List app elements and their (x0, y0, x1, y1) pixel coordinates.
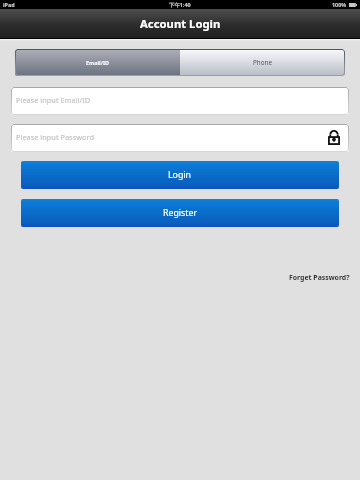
button[interactable]: Please input Password (11, 124, 349, 152)
staticText: Please input Email/ID (16, 95, 91, 105)
staticText: Please input Password (16, 132, 94, 142)
button[interactable]: Login (21, 161, 339, 189)
button[interactable]: Forget Password? (289, 273, 360, 282)
staticText: iPad (3, 1, 15, 8)
staticText: Phone (253, 58, 272, 67)
button[interactable]: Please input Email/ID (11, 87, 349, 115)
button[interactable]: Show password (328, 130, 340, 145)
button[interactable]: Email/ID (15, 49, 180, 76)
staticText: Email/ID (86, 59, 110, 66)
staticText: Register (163, 207, 198, 219)
staticText: 下午1:40 (169, 1, 191, 8)
button[interactable]: Register (21, 199, 339, 227)
button[interactable]: Phone (180, 49, 345, 76)
staticText: Account Login (140, 16, 221, 31)
staticText: Login (168, 169, 192, 181)
staticText: 100% (332, 1, 347, 8)
